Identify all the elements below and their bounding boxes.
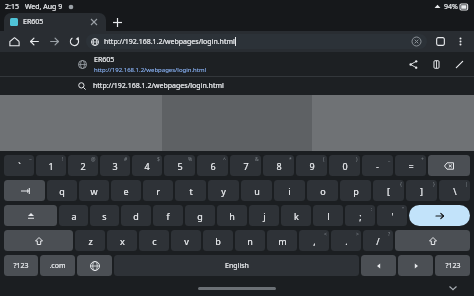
staticText: n — [247, 235, 253, 247]
button[interactable]: l — [313, 205, 343, 226]
staticText: i — [288, 185, 291, 197]
button[interactable]: d — [121, 205, 151, 226]
button[interactable]: , — [299, 230, 329, 251]
button[interactable]: w — [79, 180, 109, 201]
button[interactable]: p — [340, 180, 371, 201]
button[interactable]: Hide keyboard — [446, 281, 460, 295]
button[interactable]: ER605 — [4, 13, 106, 31]
button[interactable]: [ — [373, 180, 404, 201]
staticText: m — [278, 235, 287, 247]
button[interactable]: / — [363, 230, 393, 251]
button[interactable]: Tabs — [430, 31, 450, 52]
staticText: .com — [49, 261, 66, 271]
staticText: # — [124, 156, 128, 163]
staticText: ?123 — [13, 261, 29, 271]
button[interactable]: b — [203, 230, 233, 251]
button[interactable]: a — [59, 205, 88, 226]
button[interactable]: e — [111, 180, 141, 201]
staticText: w — [90, 185, 98, 197]
button[interactable]: ?123 — [435, 255, 470, 276]
button[interactable]: 8 — [263, 155, 294, 176]
button[interactable]: Clear — [411, 36, 422, 47]
button[interactable]: - — [362, 155, 393, 176]
button[interactable]: x — [107, 230, 137, 251]
button[interactable]: Copy — [429, 57, 443, 71]
button[interactable]: enter — [409, 205, 470, 226]
button[interactable]: r — [143, 180, 173, 201]
button[interactable]: o — [307, 180, 338, 201]
staticText: Username — [187, 83, 212, 90]
button[interactable]: Back — [24, 31, 44, 52]
staticText: _ — [388, 156, 391, 163]
button[interactable]: tab — [4, 180, 45, 201]
button[interactable]: k — [281, 205, 311, 226]
button[interactable]: 9 — [296, 155, 327, 176]
button[interactable]: ?123 — [4, 255, 38, 276]
button[interactable]: m — [267, 230, 297, 251]
button[interactable]: \ — [439, 180, 470, 201]
button[interactable]: z — [75, 230, 105, 251]
button[interactable]: ; — [345, 205, 375, 226]
staticText: ER605 — [94, 55, 115, 65]
button[interactable]: http://192.168.1.2/webpages/login.html — [0, 77, 474, 95]
staticText: z — [88, 235, 93, 247]
button[interactable]: Reload — [64, 31, 84, 52]
button[interactable]: shift — [4, 230, 73, 251]
button[interactable]: q — [47, 180, 77, 201]
button[interactable]: c — [139, 230, 169, 251]
button[interactable]: . — [331, 230, 361, 251]
button[interactable]: Forward — [44, 31, 64, 52]
staticText: English — [225, 261, 249, 271]
button[interactable]: .com — [40, 255, 75, 276]
staticText: t — [189, 185, 193, 197]
button[interactable]: Home — [4, 31, 24, 52]
button[interactable]: y — [208, 180, 239, 201]
button[interactable]: v — [171, 230, 201, 251]
button[interactable]: shift — [395, 230, 470, 251]
button[interactable]: 3 — [100, 155, 130, 176]
button[interactable]: left — [361, 255, 396, 276]
button[interactable]: ] — [406, 180, 437, 201]
button[interactable]: English — [114, 255, 359, 276]
button[interactable]: 5 — [164, 155, 195, 176]
button[interactable]: 4 — [132, 155, 162, 176]
staticText: k — [294, 210, 299, 222]
staticText: 4 — [144, 160, 150, 172]
button[interactable]: backspace — [428, 155, 470, 176]
button[interactable]: globe — [77, 255, 112, 276]
button[interactable]: ` — [4, 155, 34, 176]
button[interactable]: h — [217, 205, 247, 226]
button[interactable]: right — [398, 255, 433, 276]
button[interactable]: Edit — [452, 57, 466, 71]
button[interactable]: ER605 — [0, 52, 474, 76]
staticText: { — [400, 181, 402, 188]
button[interactable]: n — [235, 230, 265, 251]
button[interactable]: s — [90, 205, 119, 226]
button[interactable]: u — [241, 180, 272, 201]
staticText: @ — [91, 156, 96, 163]
staticText: ^ — [223, 156, 226, 163]
button[interactable]: http://192.168.1.2/webpages/login.html — [86, 34, 427, 49]
staticText: < — [324, 231, 327, 238]
button[interactable]: = — [395, 155, 426, 176]
button[interactable]: 1 — [36, 155, 66, 176]
button[interactable]: 2 — [68, 155, 98, 176]
button[interactable]: j — [249, 205, 279, 226]
button[interactable]: 0 — [329, 155, 360, 176]
button[interactable]: New tab — [106, 13, 128, 31]
staticText: , — [313, 235, 316, 247]
staticText: a — [71, 210, 77, 222]
button[interactable]: 6 — [197, 155, 228, 176]
button[interactable]: t — [175, 180, 206, 201]
staticText: h — [229, 210, 235, 222]
button[interactable]: More options — [450, 31, 470, 52]
button[interactable]: caps — [4, 205, 57, 226]
button[interactable]: i — [274, 180, 305, 201]
staticText: y — [221, 185, 226, 197]
button[interactable]: Close tab — [88, 16, 100, 28]
button[interactable]: Share — [406, 57, 420, 71]
button[interactable]: g — [185, 205, 215, 226]
button[interactable]: f — [153, 205, 183, 226]
button[interactable]: ' — [377, 205, 407, 226]
button[interactable]: 7 — [230, 155, 261, 176]
